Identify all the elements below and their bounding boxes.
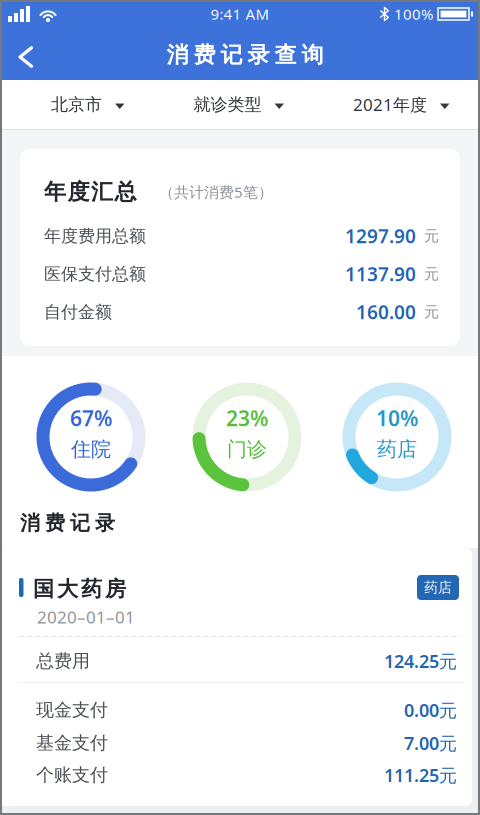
staticText: 100% [394, 4, 433, 24]
button[interactable]: 2021年度 [353, 81, 450, 128]
staticText: 1297.90 [345, 223, 416, 249]
staticText: 消费记录查询 [166, 41, 323, 68]
button[interactable]: Back [0, 28, 54, 80]
staticText: 年度费用总额 [44, 226, 146, 246]
staticText: 7.00元 [404, 731, 457, 755]
staticText: 个账支付 [36, 764, 108, 786]
staticText: 元 [424, 227, 439, 245]
staticText: 国大药房 [33, 576, 126, 602]
staticText: 160.00 [356, 299, 416, 325]
button[interactable]: 国大药房 [0, 548, 472, 806]
staticText: 2020–01–01 [37, 606, 135, 628]
staticText: 基金支付 [36, 732, 108, 754]
staticText: 消费记录 [20, 511, 115, 535]
staticText: 2021年度 [353, 93, 427, 116]
staticText: 111.25元 [384, 763, 457, 787]
staticText: 1137.90 [345, 261, 416, 287]
staticText: 年度汇总 [44, 178, 136, 205]
staticText: 元 [424, 265, 439, 283]
staticText: 北京市 [51, 94, 102, 115]
staticText: 自付金额 [44, 302, 112, 322]
staticText: 23% [226, 404, 268, 432]
staticText: 0.00元 [404, 698, 457, 722]
staticText: （共计消费5笔） [159, 182, 273, 202]
staticText: 元 [424, 303, 439, 321]
staticText: 药店 [377, 437, 417, 462]
staticText: 住院 [71, 437, 111, 462]
staticText: 67% [70, 404, 112, 432]
staticText: 124.25元 [384, 649, 457, 673]
staticText: 医保支付总额 [44, 264, 146, 284]
button[interactable]: 北京市 [51, 82, 125, 127]
staticText: 10% [376, 404, 418, 432]
staticText: 现金支付 [36, 699, 108, 721]
staticText: 就诊类型 [193, 94, 261, 115]
staticText: 门诊 [227, 437, 267, 462]
staticText: 药店 [424, 579, 452, 596]
button[interactable]: 就诊类型 [193, 82, 284, 127]
staticText: 总费用 [36, 650, 90, 672]
staticText: 9:41 AM [210, 4, 269, 24]
